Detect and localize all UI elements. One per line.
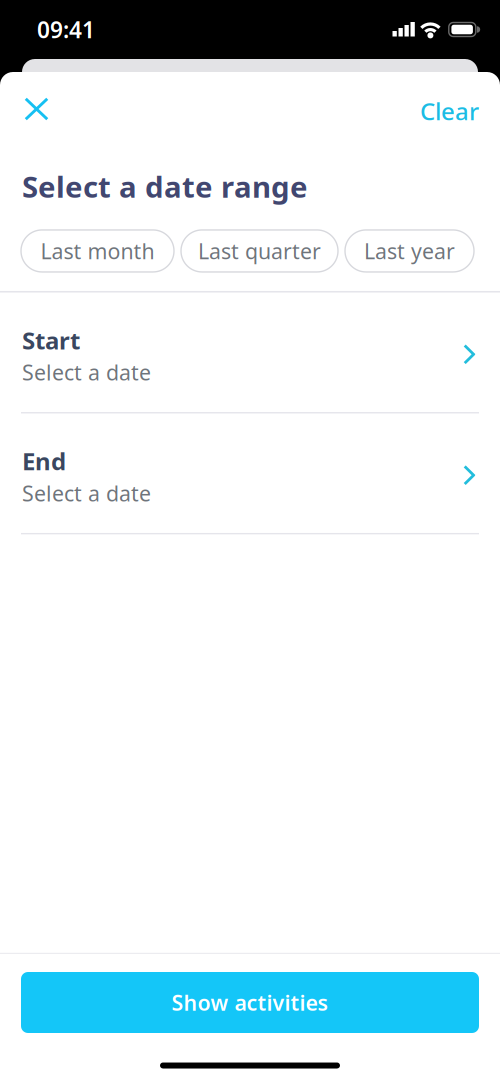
button[interactable]: Close xyxy=(13,87,60,134)
button[interactable]: Start xyxy=(0,293,500,412)
staticText: Select a date xyxy=(22,358,151,386)
staticText: Select a date xyxy=(22,479,151,507)
button[interactable]: Last month xyxy=(21,230,174,272)
staticText: Last quarter xyxy=(198,237,321,265)
button[interactable]: Clear xyxy=(419,87,478,134)
staticText: Last year xyxy=(364,237,455,265)
button[interactable]: Show activities xyxy=(21,972,479,1033)
staticText: Clear xyxy=(420,95,479,127)
staticText: Select a date range xyxy=(22,167,308,206)
staticText: 09:41 xyxy=(37,14,95,44)
staticText: Start xyxy=(22,324,80,356)
button[interactable]: Last year xyxy=(345,230,474,272)
staticText: Last month xyxy=(40,237,154,265)
staticText: Show activities xyxy=(171,988,328,1017)
staticText: End xyxy=(22,445,66,477)
button[interactable]: End xyxy=(0,413,500,533)
button[interactable]: Last quarter xyxy=(181,230,338,272)
